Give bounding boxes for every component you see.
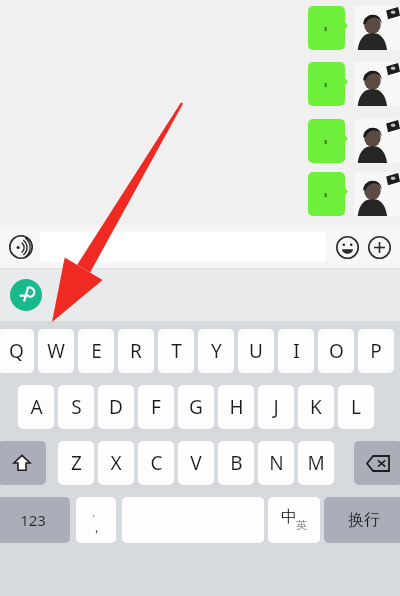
button[interactable]: Numbers [0, 497, 70, 543]
button[interactable]: A [18, 385, 54, 429]
button[interactable] [308, 172, 348, 216]
staticText: 123 [20, 510, 46, 530]
button[interactable]: Y [198, 329, 234, 373]
staticText: E [91, 338, 102, 364]
staticText: I [293, 338, 300, 364]
staticText: J [273, 394, 279, 420]
button[interactable]: Return [324, 497, 400, 543]
staticText: F [151, 394, 161, 420]
button[interactable]: X [98, 441, 134, 485]
staticText: Y [211, 338, 222, 364]
button[interactable]: P [358, 329, 394, 373]
button[interactable] [308, 119, 348, 163]
button[interactable]: Translate plugin [10, 279, 42, 311]
staticText: O [329, 338, 344, 364]
staticText: Q [9, 338, 24, 364]
button[interactable] [308, 6, 348, 50]
staticText: S [71, 394, 82, 420]
staticText: N [269, 450, 284, 476]
staticText: V [190, 450, 202, 476]
button[interactable]: S [58, 385, 94, 429]
staticText: G [189, 394, 203, 420]
button[interactable]: Z [58, 441, 94, 485]
button[interactable]: H [218, 385, 254, 429]
staticText: Z [71, 450, 82, 476]
button[interactable]: K [298, 385, 334, 429]
staticText: A [30, 394, 43, 420]
button[interactable]: I [278, 329, 314, 373]
staticText: C [150, 450, 163, 476]
button[interactable]: B [218, 441, 254, 485]
staticText: K [310, 394, 322, 420]
button[interactable]: V [178, 441, 214, 485]
button[interactable]: Avatar photo [354, 62, 400, 106]
staticText: T [171, 338, 182, 364]
button[interactable]: Voice input [6, 232, 36, 262]
button[interactable]: Switch language [268, 497, 320, 543]
button[interactable]: R [118, 329, 154, 373]
button[interactable]: F [138, 385, 174, 429]
staticText: B [230, 450, 243, 476]
button[interactable]: Q [0, 329, 34, 373]
button[interactable]: M [298, 441, 334, 485]
staticText: L [351, 394, 361, 420]
button[interactable]: T [158, 329, 194, 373]
button[interactable]: Avatar photo [354, 6, 400, 50]
button[interactable]: More options [364, 232, 394, 262]
button[interactable]: O [318, 329, 354, 373]
staticText: 英 [296, 518, 307, 532]
button[interactable]: D [98, 385, 134, 429]
button[interactable]: J [258, 385, 294, 429]
button[interactable]: Avatar photo [354, 119, 400, 163]
button[interactable]: G [178, 385, 214, 429]
staticText: ， [90, 519, 103, 535]
button[interactable]: Semicolon [76, 497, 116, 543]
button[interactable]: L [338, 385, 374, 429]
staticText: 中 [281, 507, 297, 527]
button[interactable]: Backspace [354, 441, 400, 485]
staticText: H [229, 394, 244, 420]
button[interactable]: W [38, 329, 74, 373]
button[interactable]: C [138, 441, 174, 485]
staticText: U [249, 338, 263, 364]
staticText: D [109, 394, 123, 420]
staticText: 、 [91, 505, 102, 519]
staticText: R [130, 338, 142, 364]
button[interactable] [40, 232, 326, 262]
button[interactable] [308, 62, 348, 106]
button[interactable]: Avatar photo [354, 172, 400, 216]
button[interactable]: Emoji [332, 232, 362, 262]
button[interactable]: N [258, 441, 294, 485]
staticText: 换行 [348, 510, 380, 530]
button[interactable]: E [78, 329, 114, 373]
staticText: P [370, 338, 382, 364]
button[interactable]: Shift [0, 441, 46, 485]
staticText: W [47, 338, 65, 364]
staticText: X [110, 450, 122, 476]
staticText: M [307, 450, 325, 476]
button[interactable]: U [238, 329, 274, 373]
